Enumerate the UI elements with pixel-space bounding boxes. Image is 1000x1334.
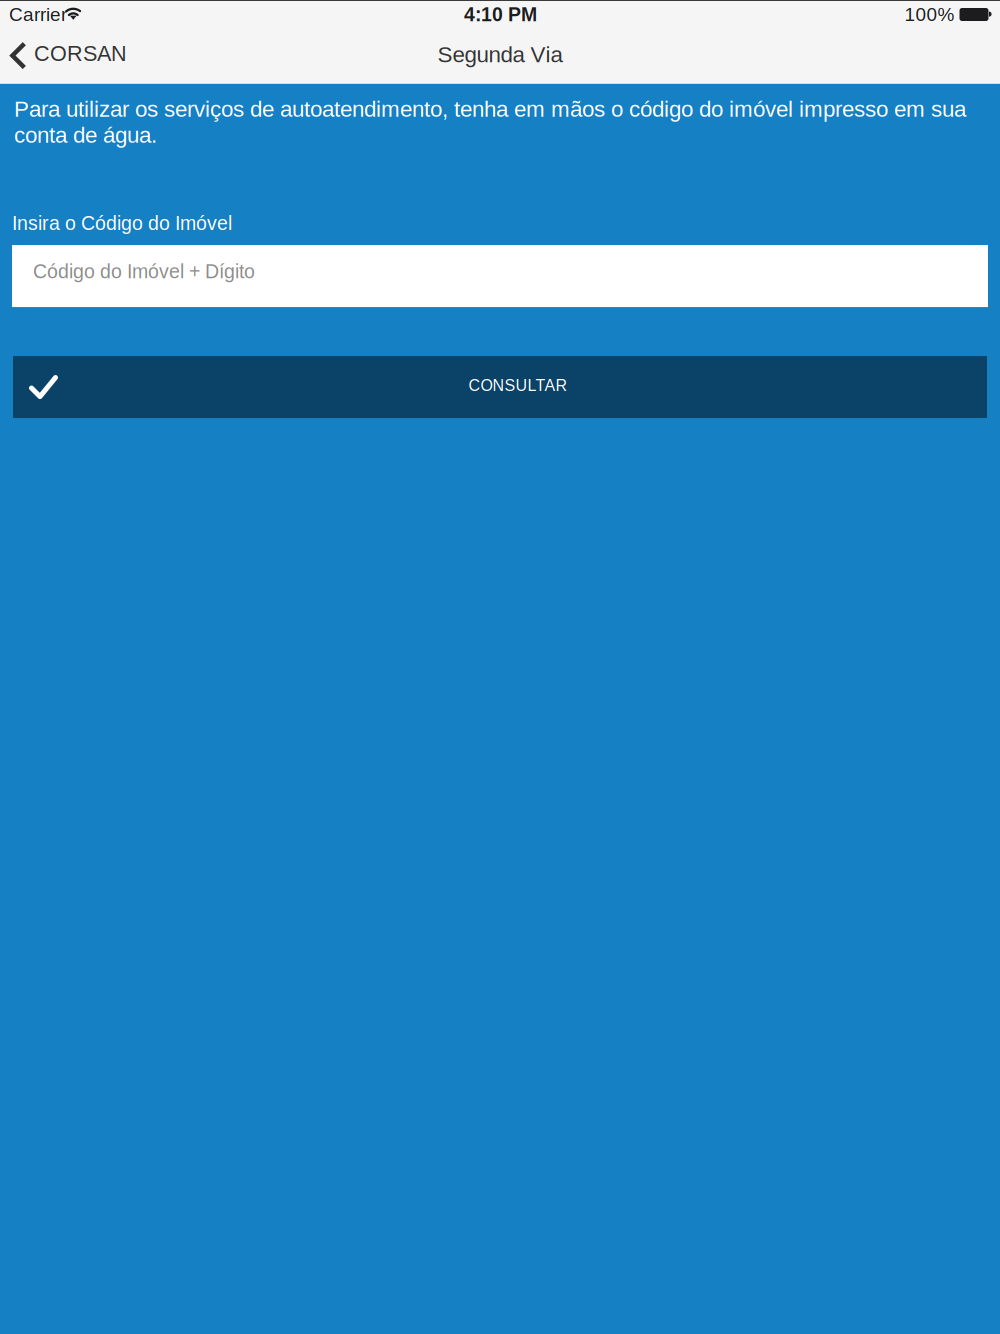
button[interactable]: CORSAN bbox=[0, 28, 141, 83]
staticText: Segunda Via bbox=[437, 42, 562, 67]
staticText: CONSULTAR bbox=[468, 377, 567, 394]
staticText: Insira o Código do Imóvel bbox=[12, 212, 232, 234]
staticText: 100% bbox=[904, 4, 954, 25]
staticText: Código do Imóvel + Dígito bbox=[33, 261, 255, 282]
staticText: Carrier bbox=[9, 4, 67, 25]
staticText: CORSAN bbox=[34, 41, 127, 65]
button[interactable]: CONSULTAR bbox=[0, 356, 1000, 418]
staticText: Para utilizar os serviços de autoatendim… bbox=[14, 96, 966, 148]
staticText: 4:10 PM bbox=[464, 4, 537, 25]
